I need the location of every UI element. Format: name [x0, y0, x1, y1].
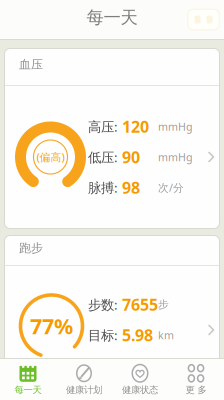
- button[interactable]: 血压: [4, 48, 220, 229]
- staticText: 跑步: [19, 241, 43, 255]
- staticText: 健康计划: [66, 384, 102, 396]
- staticText: 高压:: [88, 118, 118, 135]
- staticText: 步: [158, 298, 169, 311]
- staticText: 目标:: [88, 326, 118, 344]
- staticText: mmHg: [158, 119, 193, 134]
- staticText: mmHg: [158, 150, 193, 164]
- staticText: (偏高): [36, 150, 64, 164]
- button[interactable]: 更 多: [168, 359, 224, 399]
- staticText: 每一天: [86, 7, 137, 28]
- button[interactable]: 每一天: [0, 359, 56, 399]
- staticText: 77%: [30, 312, 73, 340]
- staticText: km: [158, 328, 174, 342]
- button[interactable]: 跑步: [4, 235, 220, 397]
- staticText: 120: [122, 116, 149, 137]
- staticText: 每一天: [14, 384, 41, 396]
- button[interactable]: 健康计划: [56, 359, 112, 399]
- staticText: 90: [122, 146, 140, 168]
- staticText: 步数:: [88, 296, 118, 313]
- staticText: 98: [122, 177, 140, 198]
- staticText: 更 多: [185, 384, 206, 396]
- staticText: 血压: [19, 57, 43, 72]
- button[interactable]: 健康状态: [112, 359, 168, 399]
- staticText: 脉搏:: [88, 179, 118, 196]
- button[interactable]: 切换视图: [187, 8, 220, 30]
- staticText: 5.98: [122, 324, 153, 346]
- staticText: 次/分: [158, 180, 184, 195]
- staticText: 7655: [122, 294, 158, 315]
- staticText: 健康状态: [122, 384, 158, 396]
- staticText: 低压:: [88, 148, 118, 166]
